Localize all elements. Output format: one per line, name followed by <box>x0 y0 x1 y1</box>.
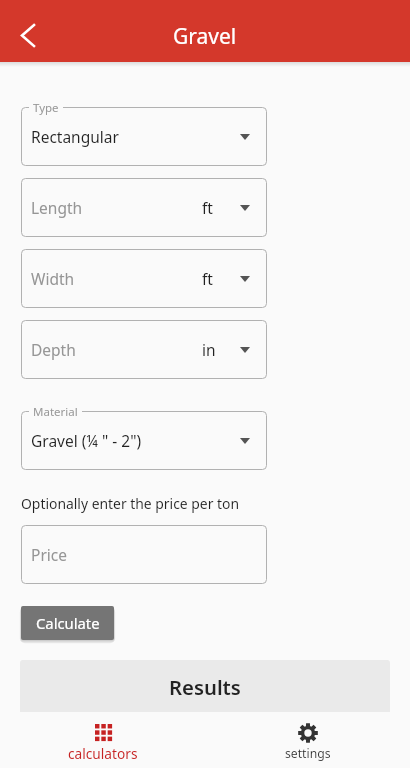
button[interactable]: Depth <box>21 320 267 379</box>
button[interactable]: settings <box>205 712 410 768</box>
staticText: Type <box>33 100 59 116</box>
staticText: ft <box>202 197 213 218</box>
staticText: in <box>202 339 216 360</box>
button[interactable]: Width <box>21 249 267 308</box>
staticText: Gravel <box>173 22 237 51</box>
button[interactable]: Length <box>21 178 267 237</box>
staticText: Results <box>169 673 241 701</box>
staticText: Optionally enter the price per ton <box>21 494 240 513</box>
staticText: Rectangular <box>31 126 119 147</box>
staticText: Calculate <box>36 613 100 633</box>
button[interactable]: Calculate <box>21 606 114 640</box>
button[interactable]: Back <box>0 7 56 63</box>
staticText: calculators <box>68 744 138 763</box>
staticText: settings <box>285 745 331 762</box>
staticText: Depth <box>31 339 76 360</box>
button[interactable]: Material <box>21 411 267 470</box>
staticText: Material <box>33 404 78 420</box>
staticText: Price <box>31 544 67 565</box>
button[interactable]: calculators <box>0 712 205 768</box>
button[interactable]: Type <box>21 107 267 166</box>
staticText: ft <box>202 268 213 289</box>
button[interactable]: Price <box>21 525 267 584</box>
staticText: Width <box>31 268 75 289</box>
staticText: Length <box>31 197 83 218</box>
staticText: Gravel (¼ " - 2") <box>31 430 142 451</box>
